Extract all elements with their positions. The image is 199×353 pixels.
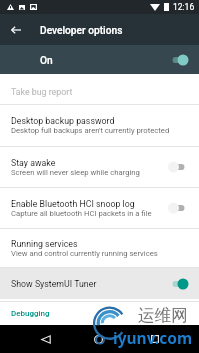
button[interactable]: Back [31, 325, 60, 353]
button[interactable]: Enable Bluetooth HCI snoop log [0, 188, 199, 228]
staticText: Desktop full backups aren't currently pr… [11, 126, 170, 135]
button[interactable]: Take bug report [0, 74, 199, 104]
staticText: View and control currently running servi… [11, 249, 158, 258]
staticText: Desktop backup password [11, 116, 115, 126]
button[interactable]: Running services [0, 229, 199, 267]
staticText: 12:16 [173, 2, 195, 12]
staticText: 运维网 [138, 305, 188, 326]
button[interactable]: Show SystemUI Tuner [0, 268, 199, 299]
staticText: Take bug report [11, 87, 73, 97]
button[interactable]: Desktop backup password [0, 105, 199, 146]
staticText: iyunv.com [113, 327, 193, 348]
button[interactable]: On [0, 45, 199, 74]
button[interactable]: Back [0, 14, 31, 45]
staticText: Enable Bluetooth HCI snoop log [11, 199, 135, 209]
staticText: Debugging [11, 309, 50, 318]
staticText: Stay awake [11, 158, 56, 168]
staticText: Show SystemUI Tuner [11, 279, 168, 289]
staticText: Screen will never sleep while charging [11, 168, 140, 177]
button[interactable]: Recent apps [140, 325, 169, 353]
staticText: Capture all bluetooth HCI packets in a f… [11, 209, 152, 218]
staticText: On [40, 55, 53, 67]
staticText: Running services [11, 239, 78, 249]
button[interactable]: Stay awake [0, 147, 199, 187]
staticText: Developer options [40, 25, 123, 37]
button[interactable]: Home [84, 325, 113, 353]
